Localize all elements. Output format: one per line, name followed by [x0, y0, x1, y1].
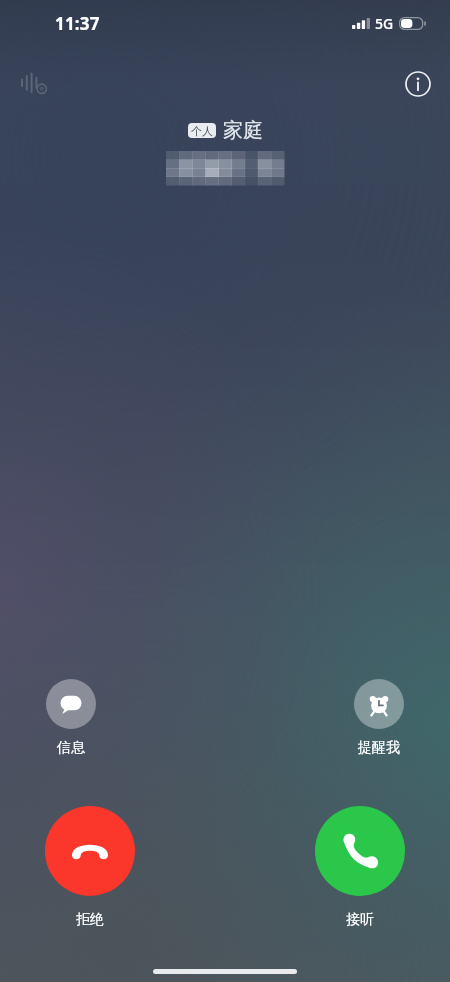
- staticText: 11:37: [55, 12, 100, 35]
- staticText: 家庭: [223, 118, 263, 143]
- button[interactable]: Decline: [44, 806, 136, 929]
- staticText: 拒绝: [76, 911, 104, 929]
- button[interactable]: Audio: [14, 64, 54, 104]
- staticText: 提醒我: [358, 739, 400, 757]
- staticText: 5G: [375, 14, 394, 33]
- button[interactable]: Call info: [398, 64, 438, 104]
- staticText: 接听: [346, 911, 374, 929]
- staticText: 信息: [57, 739, 85, 757]
- staticText: 个人: [191, 124, 213, 138]
- button[interactable]: Remind me: [342, 679, 416, 757]
- button[interactable]: Message: [34, 679, 108, 757]
- button[interactable]: Accept: [314, 806, 406, 929]
